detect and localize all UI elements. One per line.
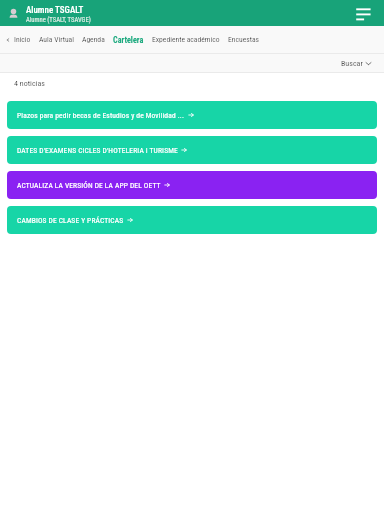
staticText: Agenda — [82, 35, 105, 44]
button[interactable]: Inicio — [10, 26, 35, 53]
button[interactable]: Expediente académico — [148, 26, 224, 53]
staticText: Plazos para pedir becas de Estudios y de… — [17, 111, 185, 120]
button[interactable]: DATES D'EXAMENS CICLES D'HOTELERIA I TUR… — [7, 136, 377, 164]
staticText: Alumne (TSALT, TSAVGE) — [26, 16, 91, 24]
button[interactable]: Encuestas — [224, 26, 264, 53]
staticText: 4 noticias — [14, 79, 45, 88]
staticText: Aula Virtual — [39, 35, 74, 44]
staticText: Inicio — [14, 35, 31, 44]
staticText: Buscar — [341, 59, 363, 68]
button[interactable]: Aula Virtual — [35, 26, 78, 53]
staticText: Cartelera — [113, 35, 144, 45]
staticText: DATES D'EXAMENS CICLES D'HOTELERIA I TUR… — [17, 146, 178, 155]
staticText: Encuestas — [228, 35, 260, 44]
staticText: Alumne TSGALT — [26, 5, 84, 16]
staticText: CAMBIOS DE CLASE Y PRÁCTICAS — [17, 216, 124, 225]
button[interactable]: CAMBIOS DE CLASE Y PRÁCTICAS — [7, 206, 377, 234]
button[interactable]: Agenda — [78, 26, 109, 53]
button[interactable]: Cartelera — [109, 26, 148, 53]
button[interactable]: ACTUALIZA LA VERSIÓN DE LA APP DEL OETT — [7, 171, 377, 199]
button[interactable]: Plazos para pedir becas de Estudios y de… — [7, 101, 377, 129]
staticText: Expediente académico — [152, 35, 220, 44]
button[interactable]: Buscar — [339, 57, 373, 70]
staticText: ACTUALIZA LA VERSIÓN DE LA APP DEL OETT — [17, 181, 161, 190]
button[interactable]: Menu — [352, 2, 374, 24]
